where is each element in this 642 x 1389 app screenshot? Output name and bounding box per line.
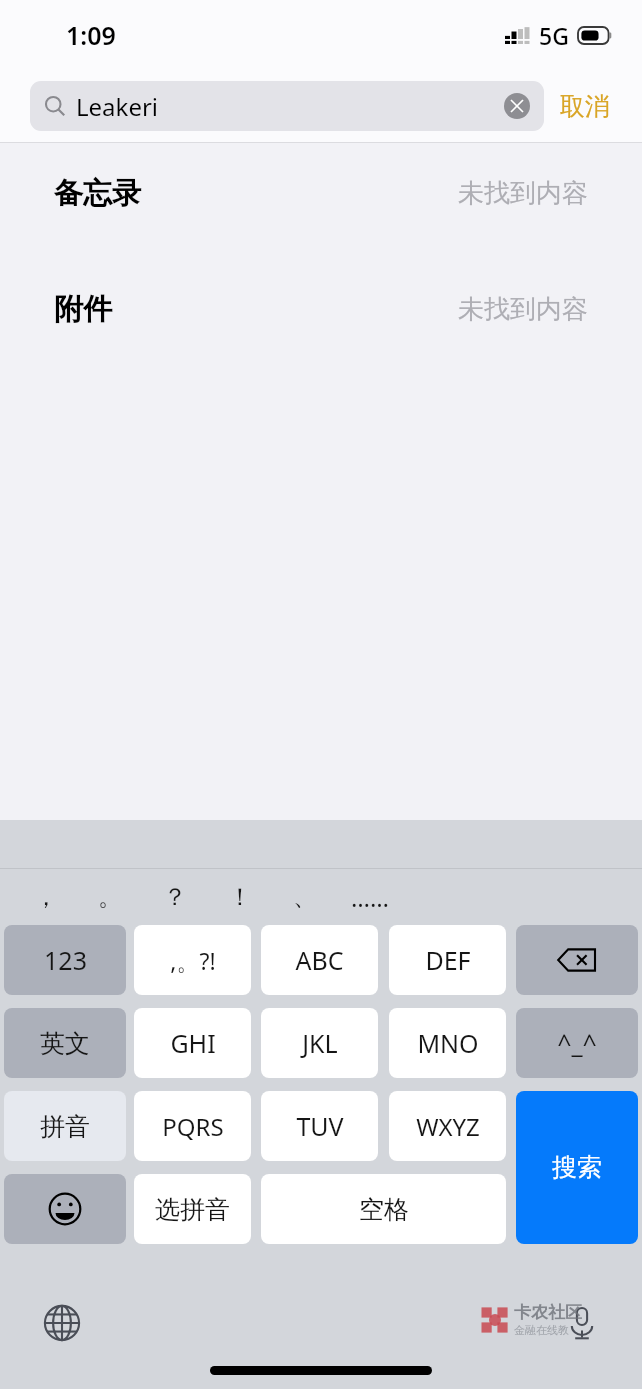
staticText: 搜索 <box>552 1152 602 1183</box>
staticText: 选拼音 <box>155 1194 230 1225</box>
button[interactable]: 、 <box>272 869 337 925</box>
button[interactable]: Delete <box>516 925 638 995</box>
button[interactable]: MNO <box>389 1008 506 1078</box>
button[interactable]: ABC <box>261 925 378 995</box>
staticText: ,。?! <box>170 945 216 976</box>
button[interactable]: ^_^ <box>516 1008 638 1078</box>
button[interactable]: 空格 <box>261 1174 506 1244</box>
staticText: MNO <box>417 1026 479 1060</box>
button[interactable]: 拼音 <box>4 1091 126 1161</box>
staticText: ， <box>34 882 58 912</box>
button[interactable]: 取消 <box>544 91 612 122</box>
staticText: ABC <box>295 943 344 977</box>
staticText: ？ <box>163 882 187 912</box>
staticText: Leakeri <box>76 90 504 123</box>
button[interactable]: Emoji <box>4 1174 126 1244</box>
button[interactable]: PQRS <box>134 1091 251 1161</box>
staticText: 拼音 <box>40 1111 90 1142</box>
staticText: 附件 <box>54 291 112 328</box>
button[interactable]: ， <box>14 869 78 925</box>
button[interactable]: Dictation <box>560 1301 604 1345</box>
staticText: 英文 <box>40 1028 90 1059</box>
staticText: 未找到内容 <box>458 177 588 210</box>
button[interactable]: ,。?! <box>134 925 251 995</box>
staticText: PQRS <box>162 1110 224 1143</box>
button[interactable]: 。 <box>78 869 142 925</box>
button[interactable]: 123 <box>4 925 126 995</box>
staticText: 1:09 <box>66 18 116 52</box>
staticText: 取消 <box>560 91 610 122</box>
button[interactable]: TUV <box>261 1091 378 1161</box>
staticText: WXYZ <box>416 1110 480 1143</box>
button[interactable]: 选拼音 <box>134 1174 251 1244</box>
button[interactable]: ！ <box>207 869 272 925</box>
button[interactable]: …… <box>337 869 402 925</box>
staticText: 备忘录 <box>54 175 141 212</box>
staticText: …… <box>351 881 389 914</box>
button[interactable]: DEF <box>389 925 506 995</box>
button[interactable]: GHI <box>134 1008 251 1078</box>
staticText: GHI <box>170 1026 216 1060</box>
button[interactable]: ？ <box>142 869 207 925</box>
button[interactable]: JKL <box>261 1008 378 1078</box>
button[interactable]: Change keyboard <box>40 1301 84 1345</box>
staticText: 空格 <box>359 1194 409 1225</box>
staticText: 5G <box>539 20 569 51</box>
staticText: ^_^ <box>557 1026 597 1060</box>
button[interactable]: WXYZ <box>389 1091 506 1161</box>
staticText: DEF <box>425 943 471 977</box>
staticText: 、 <box>293 882 317 912</box>
button[interactable]: 附件 <box>0 281 642 337</box>
staticText: ！ <box>228 882 252 912</box>
staticText: 未找到内容 <box>458 293 588 326</box>
staticText: TUV <box>296 1109 344 1143</box>
staticText: 。 <box>98 882 122 912</box>
button[interactable]: Leakeri <box>30 81 544 131</box>
button[interactable]: 备忘录 <box>0 165 642 221</box>
button[interactable]: Clear text <box>504 93 530 119</box>
button[interactable]: 英文 <box>4 1008 126 1078</box>
staticText: 123 <box>44 943 87 977</box>
button[interactable]: 搜索 <box>516 1091 638 1244</box>
staticText: 金融在线教 <box>514 1323 569 1337</box>
staticText: JKL <box>302 1026 338 1060</box>
staticText: 卡农社区 <box>514 1302 582 1323</box>
